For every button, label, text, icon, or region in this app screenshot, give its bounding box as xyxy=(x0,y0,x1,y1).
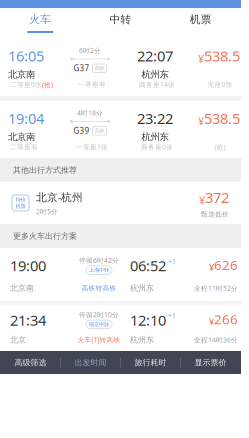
staticText: 商务座14张 xyxy=(139,80,175,89)
button[interactable]: 中转 xyxy=(80,8,161,36)
staticText: 266 xyxy=(214,310,238,328)
staticText: 机票 xyxy=(190,13,212,26)
staticText: 372 xyxy=(205,188,229,207)
button[interactable]: 19:00 xyxy=(0,248,241,301)
staticText: 上海中转 xyxy=(89,267,109,273)
staticText: 2时5分 xyxy=(36,207,58,216)
staticText: (抢) xyxy=(42,80,53,89)
staticText: ¥ xyxy=(198,51,204,66)
staticText: 火车(T)转高铁 xyxy=(77,335,120,344)
staticText: 更多火车出行方案 xyxy=(13,231,77,241)
staticText: 商务座0张 xyxy=(141,142,173,151)
staticText: 高铁 xyxy=(94,127,104,134)
staticText: 火车 xyxy=(29,13,51,26)
staticText: +1 xyxy=(168,257,176,266)
staticText: 停留6时42分 xyxy=(79,256,119,265)
button[interactable]: 特价 xyxy=(0,182,241,224)
staticText: ¥ xyxy=(199,193,205,207)
button[interactable]: 机票 xyxy=(161,8,241,36)
staticText: 一等座1张 xyxy=(76,142,108,151)
staticText: 杭州东 xyxy=(141,131,168,143)
button[interactable]: 出发时间 xyxy=(61,351,120,374)
staticText: ¥ xyxy=(198,114,204,128)
button[interactable]: 高级筛选 xyxy=(1,351,60,374)
staticText: 停留2时10分 xyxy=(79,310,119,319)
staticText: 19:04 xyxy=(8,109,44,128)
staticText: 全程14时36分 xyxy=(194,335,238,344)
staticText: G37 xyxy=(73,63,89,74)
button[interactable]: 显示票价 xyxy=(181,351,240,374)
staticText: 特价 xyxy=(15,196,25,203)
staticText: +1 xyxy=(168,311,176,320)
staticText: 北京南 xyxy=(10,283,34,293)
staticText: 其他出行方式推荐 xyxy=(13,165,77,175)
staticText: 无座0张 xyxy=(207,80,232,89)
staticText: 甄选低价 xyxy=(201,210,229,218)
staticText: 杭州东 xyxy=(130,335,154,345)
staticText: 杭州东 xyxy=(141,69,168,80)
staticText: 北京-杭州 xyxy=(36,190,83,204)
staticText: 6时2分 xyxy=(79,46,101,55)
staticText: 机票 xyxy=(15,203,25,210)
staticText: 中转 xyxy=(109,13,131,26)
staticText: 全程11时52分 xyxy=(194,284,238,293)
button[interactable]: 21:34 xyxy=(0,305,241,350)
staticText: 4时18分 xyxy=(77,109,103,117)
button[interactable]: 16:05 xyxy=(0,36,241,96)
staticText: 21:34 xyxy=(10,310,46,330)
staticText: 538.5 xyxy=(204,109,240,128)
staticText: ¥ xyxy=(209,261,214,274)
staticText: 高级筛选 xyxy=(14,358,46,367)
staticText: 19:00 xyxy=(10,256,46,275)
staticText: 北京南 xyxy=(8,69,35,80)
staticText: 22:07 xyxy=(137,46,173,66)
button[interactable]: 旅行耗时 xyxy=(121,351,180,374)
button[interactable]: 19:04 xyxy=(0,101,241,158)
staticText: 出发时间 xyxy=(74,358,106,367)
staticText: (抢) xyxy=(214,142,225,151)
staticText: 二等座0张 xyxy=(10,80,42,89)
staticText: 一等座有 xyxy=(78,80,106,89)
staticText: ¥ xyxy=(209,315,214,328)
staticText: 538.5 xyxy=(204,46,240,66)
staticText: 16:05 xyxy=(8,46,44,66)
staticText: 高铁 xyxy=(94,65,104,72)
staticText: 23:22 xyxy=(137,109,173,128)
staticText: 12:10 xyxy=(130,310,166,330)
staticText: 二等座有 xyxy=(10,143,38,151)
staticText: 北京 xyxy=(10,335,26,345)
staticText: 显示票价 xyxy=(194,358,226,367)
staticText: 626 xyxy=(214,256,238,274)
staticText: 高铁转高铁 xyxy=(81,284,116,292)
staticText: G39 xyxy=(73,125,89,136)
staticText: 杭州东 xyxy=(130,283,154,293)
staticText: 旅行耗时 xyxy=(134,358,166,367)
staticText: 06:52 xyxy=(130,256,166,275)
staticText: 北京南 xyxy=(8,131,35,143)
staticText: 南京中转 xyxy=(89,321,109,328)
button[interactable]: 火车 xyxy=(0,8,80,36)
